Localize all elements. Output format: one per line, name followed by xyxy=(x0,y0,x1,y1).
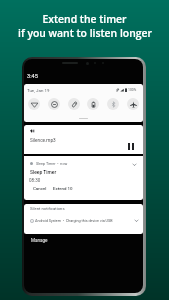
button[interactable]: Cancel xyxy=(32,185,48,192)
button[interactable]: Android System • Charging this device vi… xyxy=(30,218,139,223)
button[interactable]: Extend 10 xyxy=(52,185,74,192)
button[interactable]: Wi-Fi xyxy=(28,98,40,110)
button[interactable]: Airplane mode xyxy=(127,98,139,110)
staticText: Tue, Jan 19 xyxy=(27,88,50,93)
button[interactable]: Do not disturb xyxy=(48,98,60,110)
button[interactable]: Flashlight xyxy=(68,98,80,110)
button[interactable]: Silence.mp3 xyxy=(24,125,143,154)
staticText: Cancel xyxy=(33,186,47,191)
button[interactable]: Battery Saver xyxy=(87,98,99,110)
staticText: Extend the timer xyxy=(42,12,127,26)
staticText: Extend 10 xyxy=(53,186,73,191)
button[interactable]: Pause xyxy=(125,140,137,152)
staticText: Silent notifications xyxy=(30,206,65,211)
staticText: Manage xyxy=(31,238,48,243)
staticText: if you want to listen longer xyxy=(18,26,152,40)
staticText: Sleep Timer • now xyxy=(36,162,68,166)
button[interactable]: Manage xyxy=(28,236,51,245)
staticText: 100% xyxy=(128,88,137,92)
staticText: Sleep Timer xyxy=(30,169,57,175)
staticText: Silence.mp3 xyxy=(30,138,56,144)
button[interactable]: Sleep Timer • now xyxy=(24,156,143,200)
staticText: 3:45 xyxy=(27,73,38,80)
staticText: 08:30 xyxy=(29,178,41,183)
staticText: Android System • Charging this device vi… xyxy=(35,219,113,223)
button[interactable]: Bluetooth xyxy=(107,98,119,110)
